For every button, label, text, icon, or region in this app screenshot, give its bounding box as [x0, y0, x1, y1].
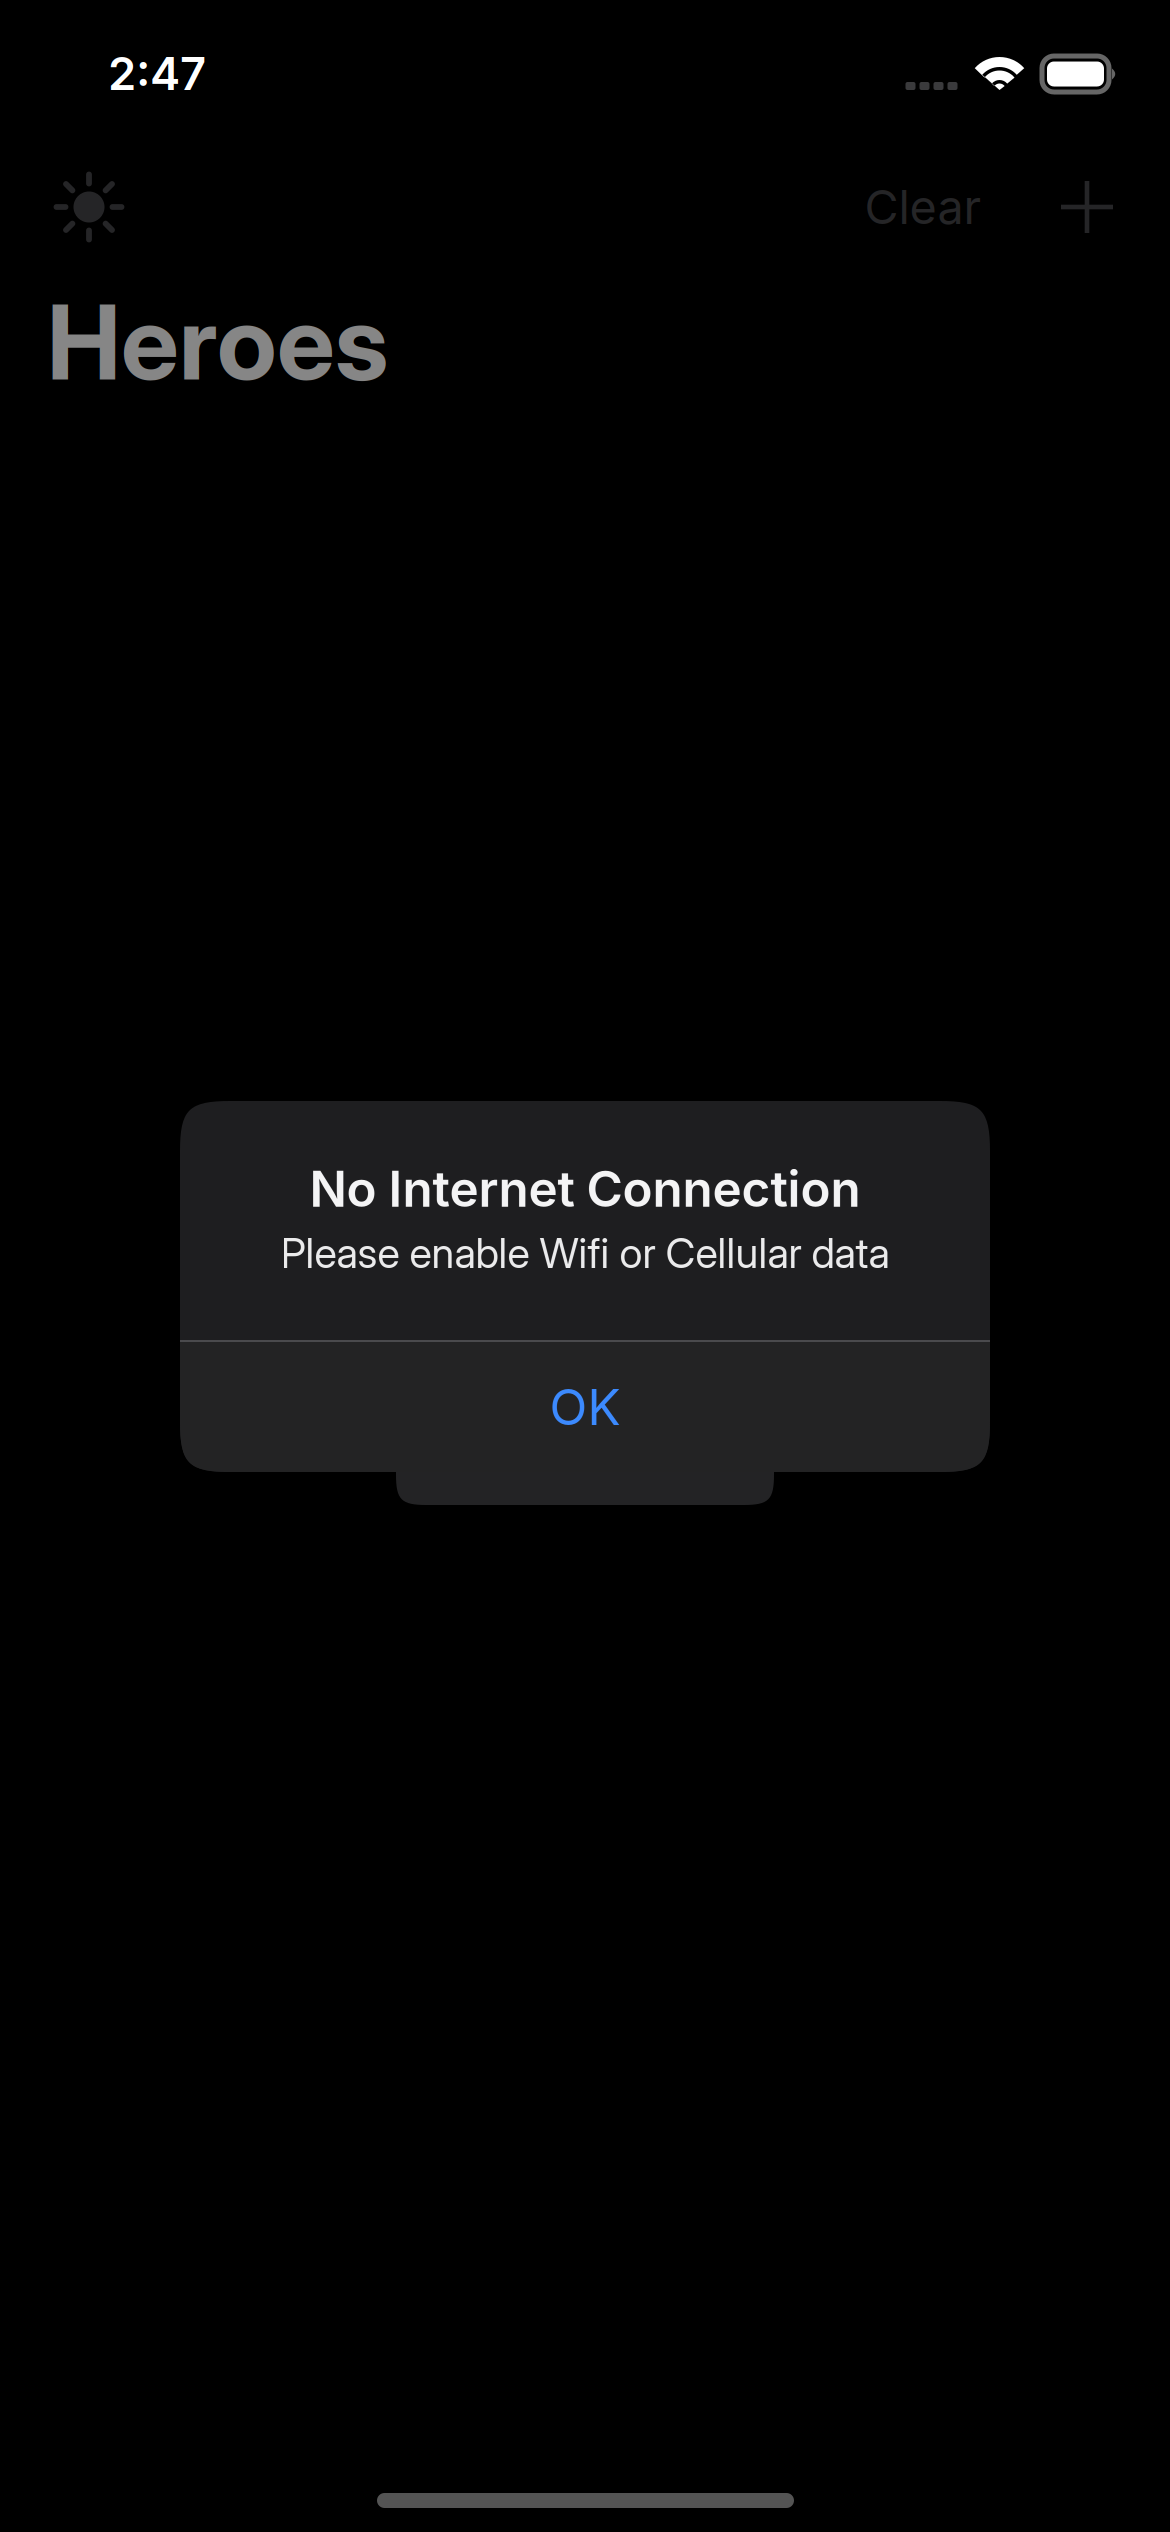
staticText: OK: [549, 1377, 620, 1437]
button[interactable]: Appearance: [41, 159, 137, 255]
button[interactable]: Add: [1039, 159, 1135, 255]
staticText: Clear: [864, 179, 981, 235]
staticText: No Internet Connection: [309, 1159, 860, 1219]
staticText: Please enable Wifi or Cellular data: [280, 1228, 889, 1278]
button[interactable]: Clear: [855, 159, 991, 255]
staticText: 2:47: [108, 46, 206, 101]
staticText: Heroes: [47, 280, 388, 404]
button[interactable]: OK: [180, 1342, 990, 1472]
